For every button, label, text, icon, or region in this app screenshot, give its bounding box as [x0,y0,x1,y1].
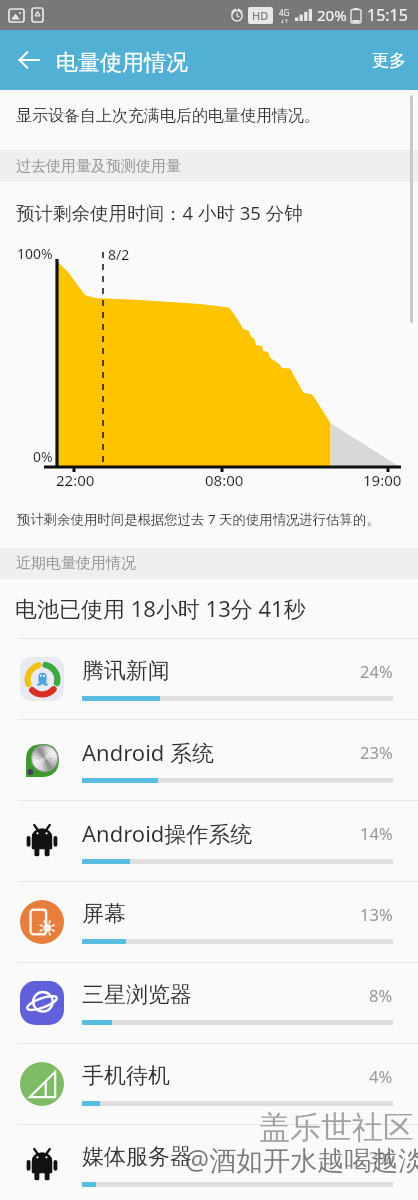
button[interactable]: 更多 [358,36,418,85]
staticText: 电量使用情况 [56,49,188,77]
staticText: 屏幕 [82,900,360,928]
staticText: 过去使用量及预测使用量 [16,157,181,176]
staticText: 腾讯新闻 [82,657,360,685]
staticText: @酒如开水越喝越淡 [185,1141,418,1178]
button[interactable]: 腾讯新闻 [0,638,418,719]
staticText: 更多 [372,50,406,71]
staticText: 8/2 [108,245,130,264]
staticText: 100% [17,244,53,263]
staticText: Android操作系统 [82,818,360,848]
staticText: 15:15 [367,4,408,26]
staticText: 08:00 [205,470,244,490]
staticText: Android 系统 [82,737,360,767]
button[interactable]: 三星浏览器 [0,962,418,1043]
staticText: 媒体服务器 [82,1143,369,1171]
staticText: 预计剩余使用时间是根据您过去 7 天的使用情况进行估算的。 [17,510,380,528]
staticText: 19:00 [363,470,402,490]
staticText: 盖乐世社区 [259,1108,414,1147]
button[interactable]: 媒体服务器 [0,1124,418,1200]
staticText: 4% [369,1065,393,1087]
staticText: 22:00 [56,470,95,490]
button[interactable]: Back [8,39,50,81]
staticText: 显示设备自上次充满电后的电量使用情况。 [16,106,320,126]
staticText: 电池已使用 18小时 13分 41秒 [15,593,306,623]
staticText: 手机待机 [82,1062,369,1090]
staticText: ↓↑ [280,18,289,24]
staticText: 20% [317,5,347,25]
button[interactable]: 屏幕 [0,881,418,962]
staticText: 近期电量使用情况 [16,554,136,573]
staticText: 三星浏览器 [82,981,369,1009]
button[interactable]: Android操作系统 [0,800,418,881]
staticText: 8% [369,984,393,1006]
staticText: 预计剩余使用时间：4 小时 35 分钟 [16,200,303,225]
staticText: 13% [360,903,393,925]
staticText: 14% [360,822,393,844]
staticText: HD [252,8,269,23]
staticText: 24% [360,660,393,682]
button[interactable]: 手机待机 [0,1043,418,1124]
button[interactable]: Android 系统 [0,719,418,800]
staticText: 4G [279,7,290,18]
staticText: 23% [360,741,393,763]
staticText: 3% [369,1146,393,1168]
staticText: 0% [33,447,53,466]
